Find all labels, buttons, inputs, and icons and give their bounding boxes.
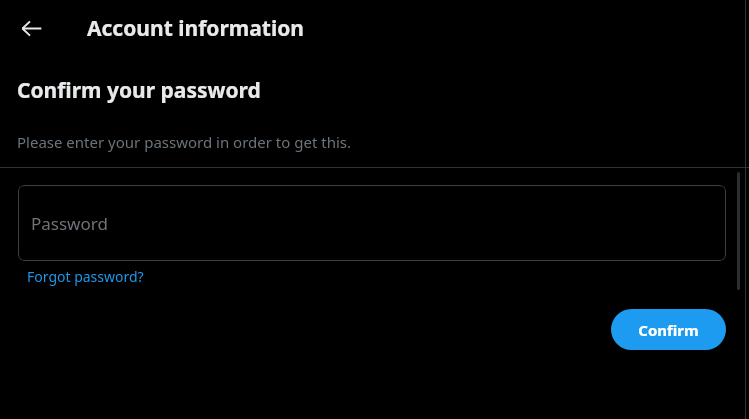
button[interactable]: Forgot password? [22, 265, 149, 288]
staticText: Please enter your password in order to g… [17, 132, 351, 152]
button[interactable]: Back [12, 9, 50, 47]
staticText: Confirm your password [17, 76, 261, 105]
staticText: Password [31, 212, 108, 235]
staticText: Account information [87, 14, 304, 43]
button[interactable]: Confirm [611, 309, 726, 350]
staticText: Forgot password? [27, 267, 144, 286]
button[interactable]: Password [18, 185, 726, 261]
staticText: Confirm [638, 320, 699, 340]
